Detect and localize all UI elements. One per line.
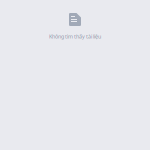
staticText: Không tìm thấy tài liệu xyxy=(49,33,101,40)
